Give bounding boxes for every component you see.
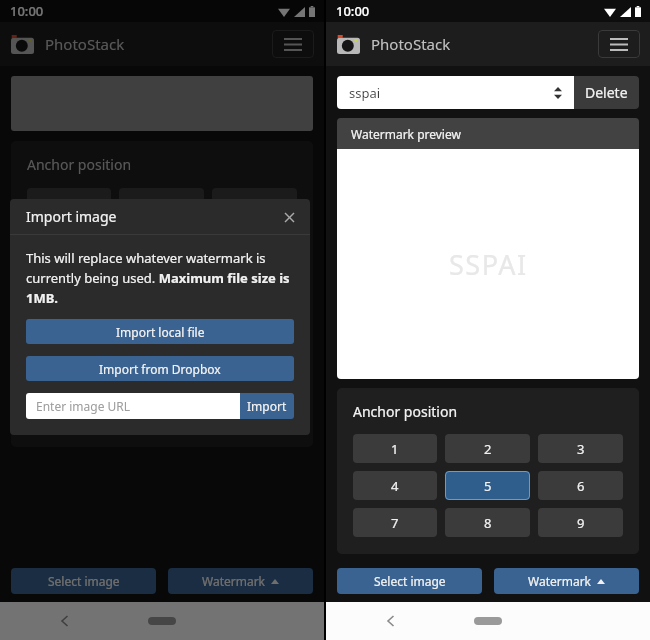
button[interactable]: 4 <box>27 225 111 254</box>
staticText: Import local file <box>116 324 205 340</box>
button[interactable]: 6 <box>212 225 297 254</box>
staticText: 5 <box>484 477 492 495</box>
staticText: Import image <box>26 207 117 226</box>
staticText: Vertical inset <box>27 391 100 407</box>
staticText: 7 <box>391 514 399 532</box>
button[interactable]: 1 <box>353 434 437 463</box>
button[interactable]: 7 <box>353 508 437 537</box>
staticText: 6 <box>577 477 585 495</box>
staticText: 8 <box>484 514 492 532</box>
staticText: Select image <box>48 573 120 589</box>
staticText: Anchor position <box>353 402 458 421</box>
button[interactable]: Home <box>148 617 176 625</box>
button[interactable]: Select image <box>11 568 156 594</box>
staticText: 8 <box>158 268 166 286</box>
button[interactable]: 2 <box>445 434 530 463</box>
button[interactable]: 3 <box>212 188 297 217</box>
button[interactable]: 9 <box>212 262 297 291</box>
staticText: Delete <box>585 83 628 102</box>
staticText: 3 <box>577 440 585 458</box>
staticText: This will replace whatever watermark is … <box>26 249 294 307</box>
button[interactable]: Watermark <box>494 568 639 594</box>
staticText: 1 <box>65 194 73 212</box>
button[interactable]: sspai <box>337 76 574 109</box>
button[interactable]: 5 <box>119 225 204 254</box>
staticText: 5 <box>158 231 166 249</box>
button[interactable]: Enter image URL <box>26 393 240 419</box>
button[interactable]: 8 <box>119 262 204 291</box>
staticText: 7 <box>65 268 73 286</box>
button[interactable]: Delete <box>574 76 639 109</box>
button[interactable]: Import from Dropbox <box>26 356 294 381</box>
staticText: PhotoStack <box>371 34 451 54</box>
button[interactable]: Menu <box>272 30 314 58</box>
staticText: Import from Dropbox <box>99 361 221 377</box>
staticText: 9 <box>251 268 259 286</box>
button[interactable]: 8 <box>445 508 530 537</box>
button[interactable]: Import local file <box>26 319 294 344</box>
staticText: Import <box>247 398 287 414</box>
staticText: 3 <box>251 194 259 212</box>
button[interactable]: Import <box>240 393 294 419</box>
staticText: Anchor position <box>27 155 132 174</box>
staticText: 10:00 <box>10 2 44 20</box>
staticText: 6 <box>251 231 259 249</box>
staticText: Watermark <box>528 573 592 589</box>
button[interactable]: Close <box>278 206 300 228</box>
staticText: 9 <box>577 514 585 532</box>
staticText: SSPAI <box>449 246 528 283</box>
staticText: Enter image URL <box>36 398 131 414</box>
button[interactable]: Watermark <box>168 568 313 594</box>
button[interactable]: 5 <box>445 471 530 500</box>
button[interactable]: Home <box>474 617 502 625</box>
button[interactable]: 9 <box>538 508 623 537</box>
staticText: 1 <box>391 440 399 458</box>
staticText: 10:00 <box>336 2 370 20</box>
staticText: Select image <box>374 573 446 589</box>
staticText: 4 <box>65 231 73 249</box>
button[interactable]: Menu <box>598 30 640 58</box>
staticText: 2 <box>158 194 166 212</box>
button[interactable]: 3 <box>538 434 623 463</box>
button[interactable]: 2 <box>119 188 204 217</box>
staticText: Watermark preview <box>351 126 461 142</box>
staticText: 2 <box>484 440 492 458</box>
staticText: sspai <box>349 84 381 102</box>
staticText: 4 <box>391 477 399 495</box>
button[interactable]: 6 <box>538 471 623 500</box>
button[interactable]: 4 <box>353 471 437 500</box>
staticText: Watermark <box>202 573 266 589</box>
button[interactable]: Select image <box>337 568 482 594</box>
staticText: Horizontal inset <box>27 331 117 347</box>
staticText: PhotoStack <box>45 34 125 54</box>
button[interactable]: 7 <box>27 262 111 291</box>
button[interactable] <box>0 0 324 640</box>
button[interactable]: 1 <box>27 188 111 217</box>
